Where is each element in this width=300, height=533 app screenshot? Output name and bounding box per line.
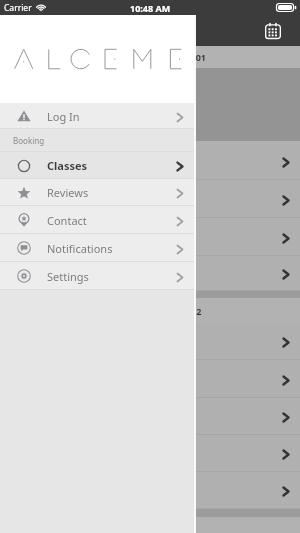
button[interactable]: [0, 142, 300, 180]
staticText: Booking: [13, 135, 45, 146]
button[interactable]: [0, 218, 300, 256]
staticText: Settings: [47, 269, 89, 284]
button[interactable]: [0, 435, 300, 472]
staticText: Monday, January 01: [118, 51, 206, 63]
staticText: Notifications: [47, 241, 113, 256]
staticText: Classes: [47, 158, 88, 173]
button[interactable]: [0, 323, 300, 360]
button[interactable]: [0, 472, 300, 509]
button[interactable]: [0, 398, 300, 435]
button[interactable]: Log In: [0, 103, 196, 129]
staticText: Tuesday, January 02: [113, 305, 202, 317]
button[interactable]: Contact: [0, 206, 196, 234]
button[interactable]: Reviews: [0, 179, 196, 206]
button[interactable]: Calendar: [265, 23, 281, 39]
staticText: Reviews: [47, 185, 89, 200]
staticText: Log In: [47, 109, 80, 124]
staticText: Contact: [47, 213, 87, 228]
button[interactable]: Settings: [0, 262, 196, 290]
button[interactable]: Classes: [0, 152, 196, 179]
staticText: Carrier: [4, 2, 32, 14]
button[interactable]: Notifications: [0, 234, 196, 262]
button[interactable]: [0, 360, 300, 398]
button[interactable]: [0, 180, 300, 218]
staticText: 10:48 AM: [130, 2, 171, 14]
button[interactable]: [0, 256, 300, 291]
